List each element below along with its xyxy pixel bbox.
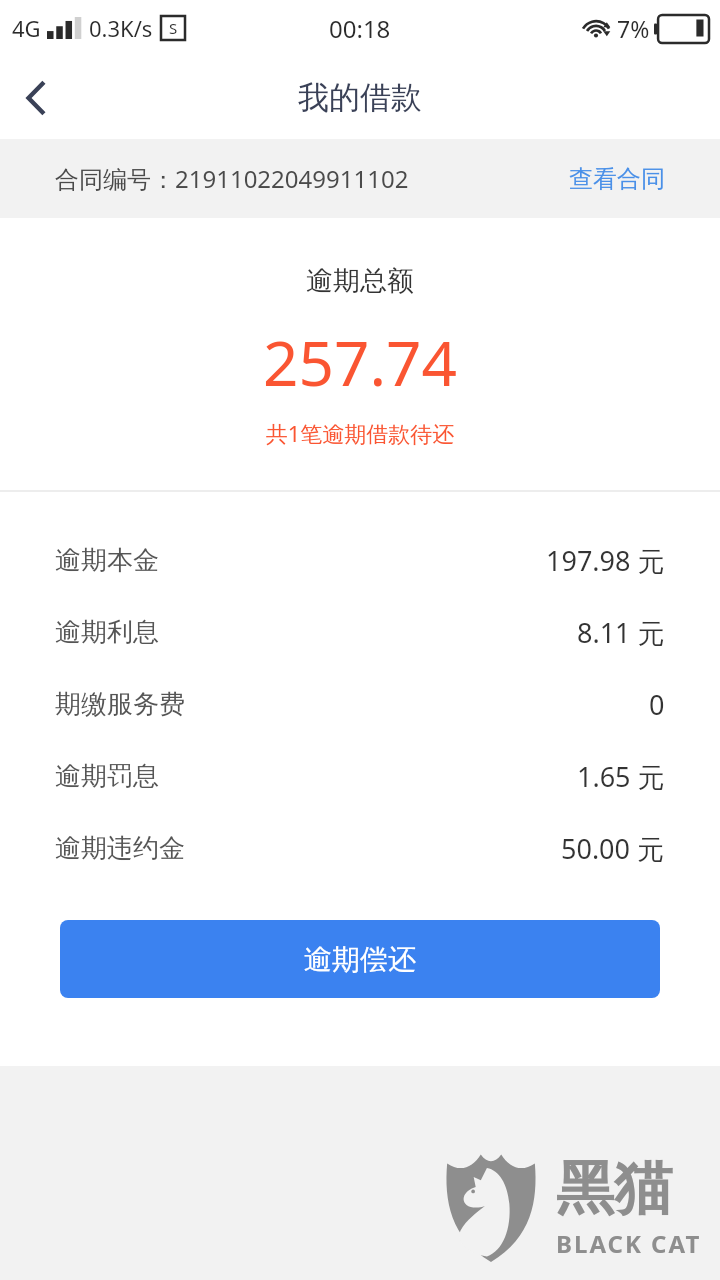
staticText: BLACK CAT — [556, 1227, 702, 1260]
staticText: 1.65 元 — [577, 758, 665, 795]
staticText: 逾期利息 — [55, 616, 159, 649]
staticText: 逾期罚息 — [55, 760, 159, 793]
staticText: S — [169, 18, 178, 38]
staticText: 逾期违约金 — [55, 832, 185, 865]
staticText: 197.98 元 — [546, 542, 665, 579]
button[interactable]: 查看合同 — [514, 150, 720, 208]
button[interactable]: 逾期本金 — [0, 524, 720, 596]
staticText: 合同编号：21911022049911102 — [55, 162, 409, 195]
staticText: 00:18 — [329, 12, 391, 45]
staticText: 7% — [617, 13, 650, 44]
staticText: 0.3K/s — [89, 13, 153, 43]
staticText: 共1笔逾期借款待还 — [0, 418, 720, 448]
staticText: 50.00 元 — [561, 830, 665, 867]
staticText: 逾期本金 — [55, 544, 159, 577]
button[interactable]: 逾期偿还 — [60, 920, 660, 998]
button[interactable]: 逾期罚息 — [0, 740, 720, 812]
staticText: 查看合同 — [569, 164, 665, 194]
staticText: 257.74 — [0, 320, 720, 404]
button[interactable]: Back — [0, 62, 72, 134]
staticText: 8.11 元 — [577, 614, 665, 651]
staticText: 我的借款 — [298, 78, 422, 117]
staticText: 黑猫 — [556, 1152, 672, 1225]
button[interactable]: 逾期违约金 — [0, 812, 720, 884]
staticText: 期缴服务费 — [55, 688, 185, 721]
button[interactable]: 逾期利息 — [0, 596, 720, 668]
staticText: 逾期偿还 — [304, 942, 416, 977]
staticText: 4G — [12, 13, 41, 43]
button[interactable]: 期缴服务费 — [0, 668, 720, 740]
staticText: 0 — [649, 686, 665, 723]
staticText: 逾期总额 — [0, 264, 720, 298]
